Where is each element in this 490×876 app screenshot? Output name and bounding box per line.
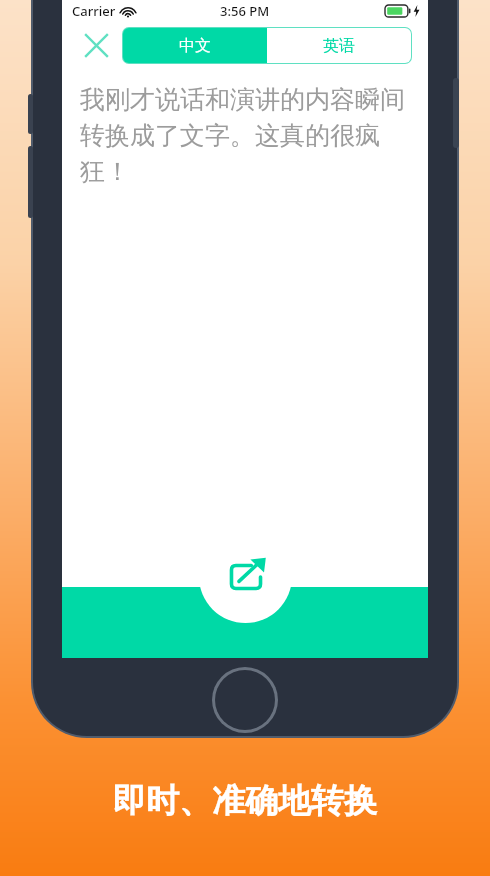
staticText: 我刚才说话和演讲的内容瞬间转换成了文字。这真的很疯狂！ [80, 84, 414, 187]
staticText: Carrier [72, 2, 116, 20]
staticText: 中文 [179, 36, 211, 56]
staticText: 3:56 PM [220, 2, 270, 20]
button[interactable]: Share [199, 530, 292, 623]
button[interactable]: 中文 [123, 28, 267, 63]
button[interactable]: 英语 [267, 28, 411, 63]
staticText: 英语 [323, 36, 355, 56]
button[interactable]: Close [76, 25, 116, 65]
staticText: 即时、准确地转换 [113, 780, 377, 822]
